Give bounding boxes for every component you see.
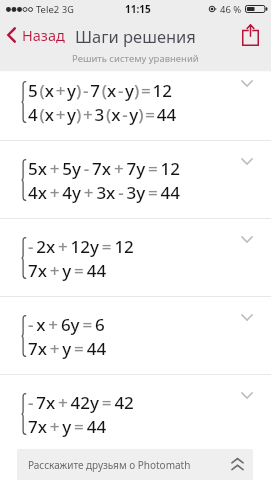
staticText: 5 (x + y) - 7 (x - y) = 12 4 (x + y) + 3… xyxy=(28,78,177,126)
button[interactable]: Share xyxy=(238,23,262,47)
button[interactable]: - x + 6y = 6 7x + y = 44 xyxy=(0,297,271,374)
staticText: Решить систему уравнений xyxy=(72,52,199,65)
button[interactable]: Расскажите друзьям о Photomath xyxy=(17,449,253,480)
button[interactable]: Expand step xyxy=(230,72,264,103)
button[interactable]: Назад xyxy=(7,18,65,52)
staticText: - 7x + 42y = 42 7x + y = 44 xyxy=(28,390,134,438)
button[interactable]: 5x + 5y - 7x + 7y = 12 4x + 4y + 3x - 3y… xyxy=(0,141,271,218)
staticText: - 2x + 12y = 12 7x + y = 44 xyxy=(28,234,134,282)
button[interactable]: - 2x + 12y = 12 7x + y = 44 xyxy=(0,219,271,296)
staticText: - x + 6y = 6 7x + y = 44 xyxy=(28,312,107,360)
staticText: 46 % xyxy=(220,3,242,16)
staticText: Шаги решения xyxy=(75,25,196,47)
staticText: Расскажите друзьям о Photomath xyxy=(28,458,191,472)
staticText: Tele2 xyxy=(36,3,60,16)
button[interactable]: - 7x + 42y = 42 7x + y = 44 xyxy=(0,375,271,452)
staticText: 3G xyxy=(62,3,74,15)
staticText: Назад xyxy=(22,25,65,45)
button[interactable]: Expand step xyxy=(230,141,264,181)
button[interactable]: Expand step xyxy=(230,219,264,259)
button[interactable]: Expand step xyxy=(230,297,264,337)
staticText: 5x + 5y - 7x + 7y = 12 4x + 4y + 3x - 3y… xyxy=(28,156,180,204)
staticText: 11:15 xyxy=(125,2,151,16)
button[interactable]: 5 (x + y) - 7 (x - y) = 12 4 (x + y) + 3… xyxy=(0,72,271,140)
button[interactable]: Expand step xyxy=(230,375,264,415)
